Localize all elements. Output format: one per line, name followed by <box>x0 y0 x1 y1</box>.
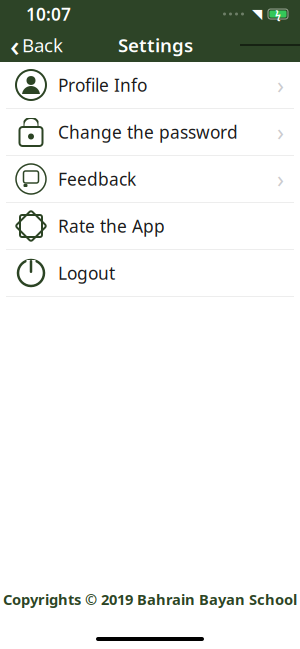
staticText: Copyrights © 2019 Bahrain Bayan School <box>3 589 297 609</box>
staticText: Back <box>22 33 63 57</box>
button[interactable]: Logout <box>0 250 300 297</box>
staticText: Settings <box>118 33 193 57</box>
staticText: Profile Info <box>58 73 147 96</box>
button[interactable]: Profile Info <box>0 62 300 109</box>
button[interactable]: Rate the App <box>0 203 300 250</box>
button[interactable]: Feedback <box>0 156 300 203</box>
staticText: › <box>277 164 284 194</box>
staticText: Change the password <box>58 120 238 143</box>
button[interactable]: ‹ <box>0 28 71 62</box>
staticText: › <box>277 70 284 100</box>
staticText: › <box>277 117 284 147</box>
staticText: Feedback <box>58 167 136 190</box>
button[interactable]: Change the password <box>0 109 300 156</box>
staticText: 10:07 <box>26 2 71 25</box>
staticText: Rate the App <box>58 214 165 237</box>
staticText: Logout <box>58 261 115 284</box>
staticText: ◥ <box>252 6 262 21</box>
staticText: ϟ <box>275 7 281 21</box>
staticText: ‹ <box>10 25 20 64</box>
